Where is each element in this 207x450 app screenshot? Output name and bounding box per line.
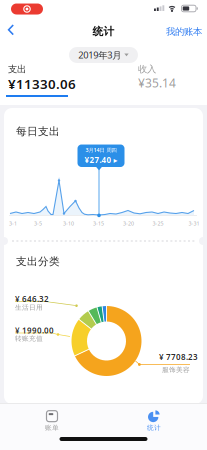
button[interactable]: 支出	[8, 63, 76, 93]
button[interactable]: 统计	[124, 406, 184, 436]
staticText: ¥35.14	[138, 75, 176, 91]
staticText: ¥ 646.32	[15, 293, 49, 304]
staticText: 支出分类	[16, 255, 60, 268]
staticText: ¥11330.06	[8, 75, 76, 93]
staticText: 3-5	[34, 220, 42, 227]
staticText: 3-1	[9, 220, 17, 227]
staticText: 3-25	[152, 220, 163, 227]
button[interactable]: 我的账本	[166, 26, 202, 37]
staticText: ¥27.40 ▸	[84, 154, 117, 165]
staticText: 收入	[138, 63, 156, 75]
staticText: 2019年3月	[78, 49, 121, 61]
staticText: 转账充值	[15, 334, 43, 343]
staticText: 3-15	[93, 220, 104, 227]
staticText: 3-31	[188, 220, 199, 227]
staticText: 3月14日 周四	[85, 146, 116, 153]
staticText: 我的账本	[166, 26, 202, 37]
staticText: 统计	[92, 25, 114, 38]
staticText: 3-10	[63, 220, 74, 227]
staticText: ¥ 7708.23	[159, 351, 198, 362]
staticText: 每日支出	[16, 125, 60, 138]
staticText: 统计	[147, 424, 161, 432]
button[interactable]: 收入	[138, 63, 176, 91]
button[interactable]: 3月14日 周四	[77, 144, 124, 167]
staticText: ¥ 1990.00	[15, 325, 54, 336]
staticText: 生活日用	[15, 303, 43, 312]
button[interactable]	[1, 15, 21, 43]
staticText: 账单	[45, 424, 59, 432]
button[interactable]: 2019年3月	[69, 47, 138, 63]
button[interactable]: 账单	[22, 406, 82, 436]
staticText: 服饰美容	[162, 366, 190, 374]
staticText: 支出	[8, 63, 26, 75]
staticText: 3-20	[123, 220, 134, 227]
